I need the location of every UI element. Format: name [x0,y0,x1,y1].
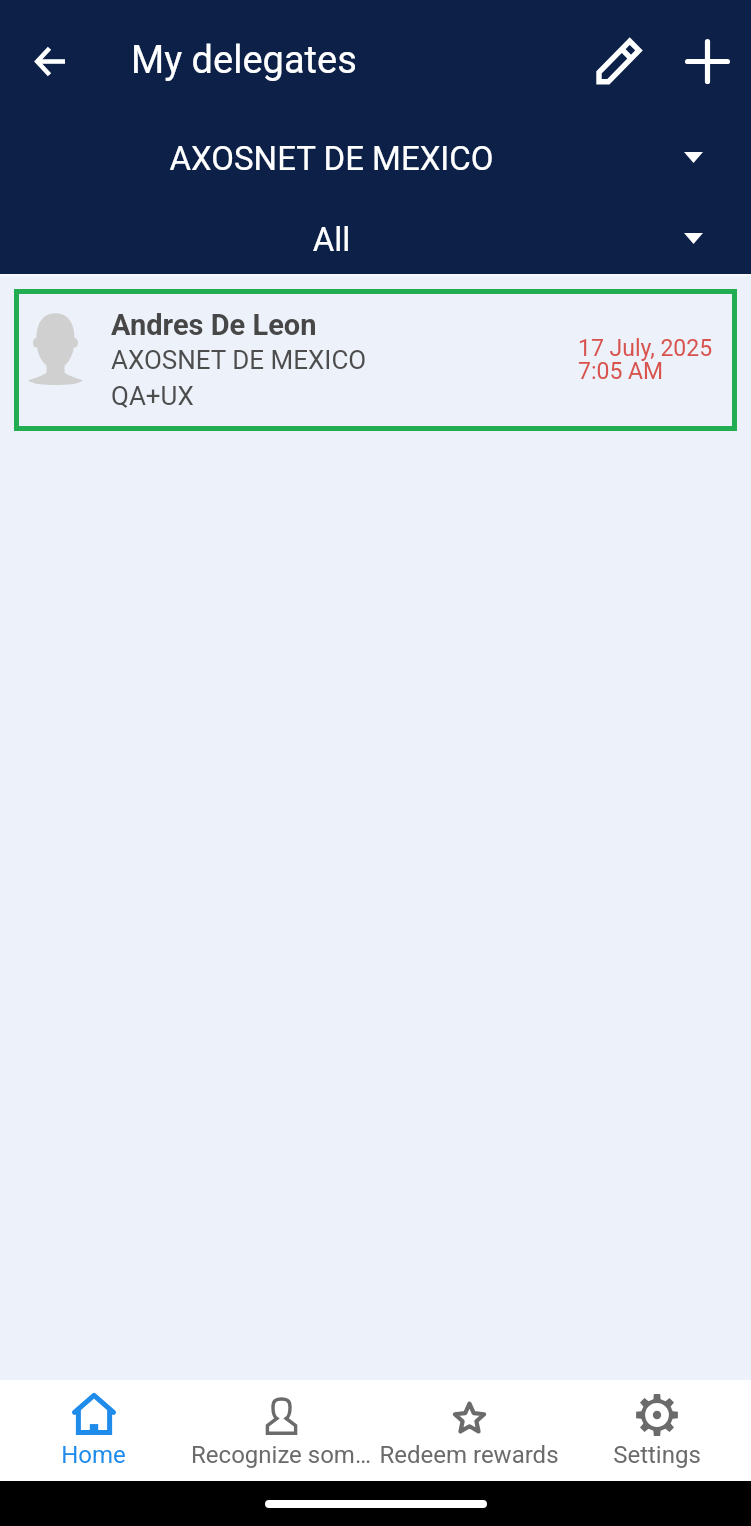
staticText: All [0,220,663,259]
button[interactable]: All [0,201,751,277]
button[interactable]: AXOSNET DE MEXICO [0,120,751,196]
staticText: Redeem rewards [375,1441,563,1469]
staticText: My delegates [131,38,357,83]
staticText: Home [0,1441,187,1469]
staticText: QA+UX [111,381,194,411]
staticText: AXOSNET DE MEXICO [111,345,367,375]
button[interactable]: Andres De Leon [14,289,737,431]
button[interactable]: Settings [563,1380,751,1481]
button[interactable]: Home [0,1380,187,1481]
button[interactable]: Add [665,19,749,103]
button[interactable]: Recognize som… [187,1380,375,1481]
staticText: Andres De Leon [111,308,317,342]
button[interactable]: Redeem rewards [375,1380,563,1481]
staticText: 17 July, 2025 [578,335,713,362]
staticText: 7:05 AM [578,358,664,385]
staticText: Recognize som… [187,1441,375,1469]
button[interactable]: Edit [577,19,661,103]
staticText: AXOSNET DE MEXICO [0,139,663,178]
staticText: Settings [563,1441,751,1469]
button[interactable]: Back [8,20,91,103]
